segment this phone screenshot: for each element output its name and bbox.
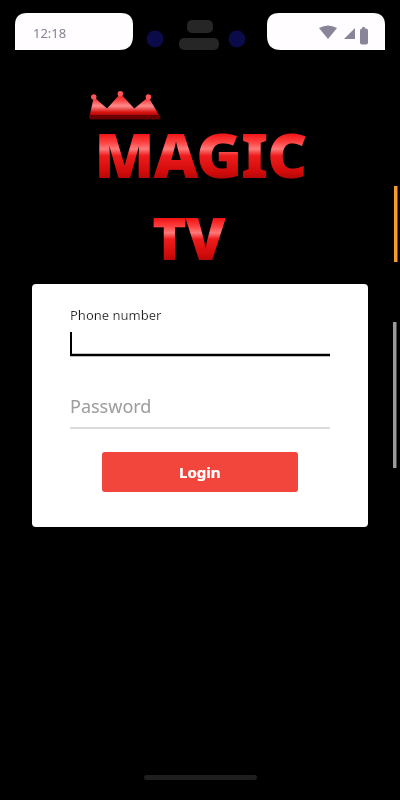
- staticText: Login: [179, 462, 221, 482]
- button[interactable]: Phone number: [70, 306, 330, 356]
- staticText: TV: [152, 198, 225, 277]
- button[interactable]: Password: [70, 396, 330, 432]
- button[interactable]: Login: [102, 452, 298, 492]
- staticText: Phone number: [70, 306, 162, 324]
- staticText: MAGIC: [94, 112, 307, 196]
- staticText: 12:18: [33, 24, 67, 42]
- staticText: Password: [70, 394, 152, 419]
